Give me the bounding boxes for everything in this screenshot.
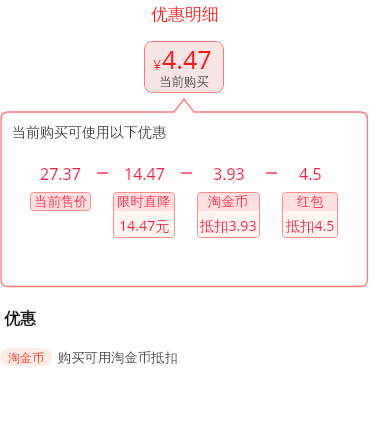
staticText: 优惠 [4,309,36,329]
staticText: 14.47元 [119,216,170,235]
staticText: 抵扣4.5 [286,216,335,235]
button[interactable]: ¥ [144,41,224,93]
staticText: 当前购买可使用以下优惠 [12,124,166,142]
staticText: 淘金币 [8,350,44,365]
staticText: 当前购买 [159,74,209,90]
button[interactable]: 当前售价 [30,192,91,211]
button[interactable]: 淘金币 [0,348,52,366]
staticText: 优惠明细 [151,4,219,25]
staticText: 抵扣3.93 [200,216,257,235]
staticText: 淘金币 [208,193,249,210]
button[interactable]: 淘金币 [197,192,260,238]
staticText: 当前售价 [34,193,88,210]
staticText: 14.47 [124,163,165,185]
staticText: 27.37 [40,163,81,185]
staticText: 限时直降 [117,193,171,210]
staticText: 3.93 [213,163,245,185]
button[interactable]: 红包 [282,192,338,238]
staticText: 购买可用淘金币抵扣 [58,349,178,366]
staticText: 4.47 [162,42,212,76]
staticText: ¥ [153,55,162,74]
staticText: 红包 [297,193,324,210]
button[interactable]: 限时直降 [113,192,175,238]
staticText: 4.5 [299,163,322,185]
